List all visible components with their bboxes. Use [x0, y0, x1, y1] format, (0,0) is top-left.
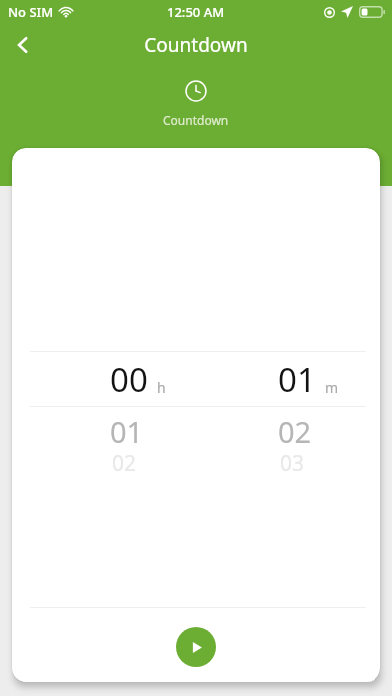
staticText: m — [325, 378, 339, 397]
staticText: Countdown — [163, 112, 229, 128]
staticText: Countdown — [144, 32, 248, 58]
button[interactable]: 00 — [74, 356, 214, 402]
staticText: No SIM — [8, 3, 54, 21]
staticText: 01 — [278, 357, 316, 402]
button[interactable]: 01 — [242, 356, 380, 402]
staticText: 03 — [280, 449, 305, 478]
button[interactable]: Start — [176, 627, 216, 667]
staticText: 12:50 AM — [167, 3, 225, 21]
button[interactable]: Back — [0, 24, 46, 66]
staticText: 02 — [112, 449, 137, 478]
button[interactable]: Countdown — [0, 80, 392, 128]
staticText: 01 — [110, 412, 144, 450]
staticText: 02 — [278, 412, 312, 450]
staticText: 00 — [110, 357, 148, 402]
staticText: h — [157, 378, 166, 397]
